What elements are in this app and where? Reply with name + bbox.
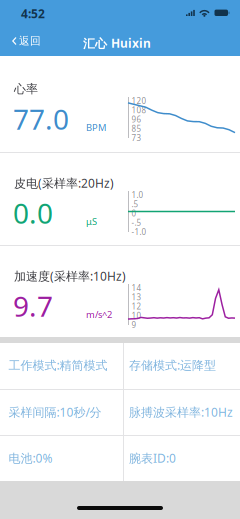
staticText: 9: [131, 319, 136, 330]
staticText: 14: [131, 283, 141, 293]
button[interactable]: 电池:0%: [0, 436, 123, 481]
staticText: 加速度(采样率:10Hz): [14, 268, 126, 284]
staticText: 12: [131, 301, 141, 312]
staticText: m/s^2: [86, 308, 112, 321]
staticText: BPM: [86, 121, 106, 134]
staticText: 皮电(采样率:20Hz): [14, 175, 114, 191]
staticText: 73: [131, 132, 141, 143]
staticText: 汇心 Huixin: [83, 35, 151, 51]
staticText: 77.0: [13, 100, 69, 138]
staticText: μS: [86, 215, 97, 228]
staticText: 9.7: [13, 287, 53, 325]
staticText: 85: [131, 123, 141, 134]
staticText: .5: [131, 199, 138, 210]
staticText: 4:52: [21, 5, 45, 22]
staticText: 108: [131, 105, 146, 116]
staticText: 0: [131, 208, 136, 219]
staticText: 腕表ID:0: [129, 450, 176, 466]
button[interactable]: 采样间隔:10秒/分: [0, 390, 123, 435]
staticText: 脉搏波采样率:10Hz: [129, 404, 233, 420]
staticText: 120: [131, 96, 146, 106]
staticText: 13: [131, 292, 141, 303]
staticText: 电池:0%: [8, 450, 52, 466]
staticText: -1.0: [131, 226, 146, 237]
staticText: 1.0: [131, 190, 143, 200]
staticText: 返回: [19, 34, 41, 48]
staticText: 10: [131, 310, 141, 321]
staticText: 0.0: [13, 194, 53, 232]
staticText: 96: [131, 114, 141, 125]
staticText: 存储模式:运降型: [129, 357, 216, 373]
button[interactable]: 脉搏波采样率:10Hz: [124, 390, 240, 435]
staticText: 工作模式:精简模式: [8, 357, 107, 373]
button[interactable]: 存储模式:运降型: [124, 343, 240, 389]
staticText: -.5: [131, 217, 141, 228]
button[interactable]: 工作模式:精简模式: [0, 343, 123, 389]
staticText: 采样间隔:10秒/分: [8, 404, 101, 420]
button[interactable]: 腕表ID:0: [124, 436, 240, 481]
button[interactable]: 返回: [0, 26, 51, 56]
staticText: 心率: [14, 81, 38, 96]
